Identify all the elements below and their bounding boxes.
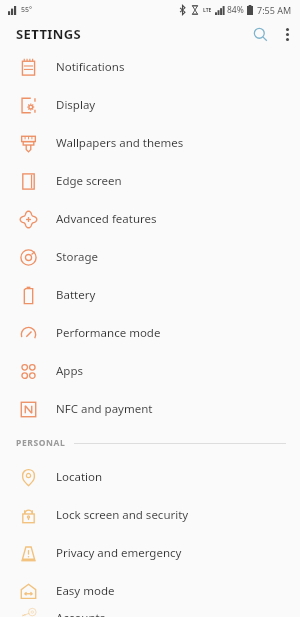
button[interactable]: Display bbox=[0, 86, 300, 124]
button[interactable]: NFC and payment bbox=[0, 390, 300, 428]
staticText: Lock screen and security bbox=[56, 507, 189, 523]
button[interactable]: Wallpapers and themes bbox=[0, 124, 300, 162]
button[interactable]: Edge screen bbox=[0, 162, 300, 200]
button[interactable]: Lock screen and security bbox=[0, 496, 300, 534]
staticText: Accounts bbox=[56, 610, 106, 617]
button[interactable]: Storage bbox=[0, 238, 300, 276]
staticText: LTE bbox=[203, 7, 212, 14]
staticText: Battery bbox=[56, 287, 96, 303]
staticText: Display bbox=[56, 97, 96, 113]
button[interactable]: Search bbox=[246, 20, 274, 48]
staticText: Apps bbox=[56, 363, 84, 379]
staticText: Notifications bbox=[56, 59, 125, 75]
staticText: Storage bbox=[56, 249, 98, 265]
staticText: Wallpapers and themes bbox=[56, 135, 184, 151]
staticText: Advanced features bbox=[56, 211, 157, 227]
button[interactable]: Easy mode bbox=[0, 572, 300, 610]
staticText: NFC and payment bbox=[56, 401, 153, 417]
button[interactable]: Notifications bbox=[0, 48, 300, 86]
button[interactable]: Battery bbox=[0, 276, 300, 314]
staticText: PERSONAL bbox=[16, 437, 66, 449]
button[interactable]: Privacy and emergency bbox=[0, 534, 300, 572]
staticText: SETTINGS bbox=[16, 25, 82, 43]
button[interactable]: Performance mode bbox=[0, 314, 300, 352]
staticText: Edge screen bbox=[56, 173, 122, 189]
staticText: Easy mode bbox=[56, 583, 115, 599]
button[interactable]: Apps bbox=[0, 352, 300, 390]
staticText: 55° bbox=[21, 5, 32, 15]
staticText: Privacy and emergency bbox=[56, 545, 182, 561]
button[interactable]: More options bbox=[274, 21, 300, 47]
button[interactable]: Advanced features bbox=[0, 200, 300, 238]
button[interactable]: Accounts bbox=[0, 610, 300, 617]
staticText: 84% bbox=[227, 4, 244, 16]
staticText: 7:55 AM bbox=[257, 4, 292, 16]
staticText: Performance mode bbox=[56, 325, 161, 341]
button[interactable]: Location bbox=[0, 458, 300, 496]
staticText: Location bbox=[56, 469, 103, 485]
